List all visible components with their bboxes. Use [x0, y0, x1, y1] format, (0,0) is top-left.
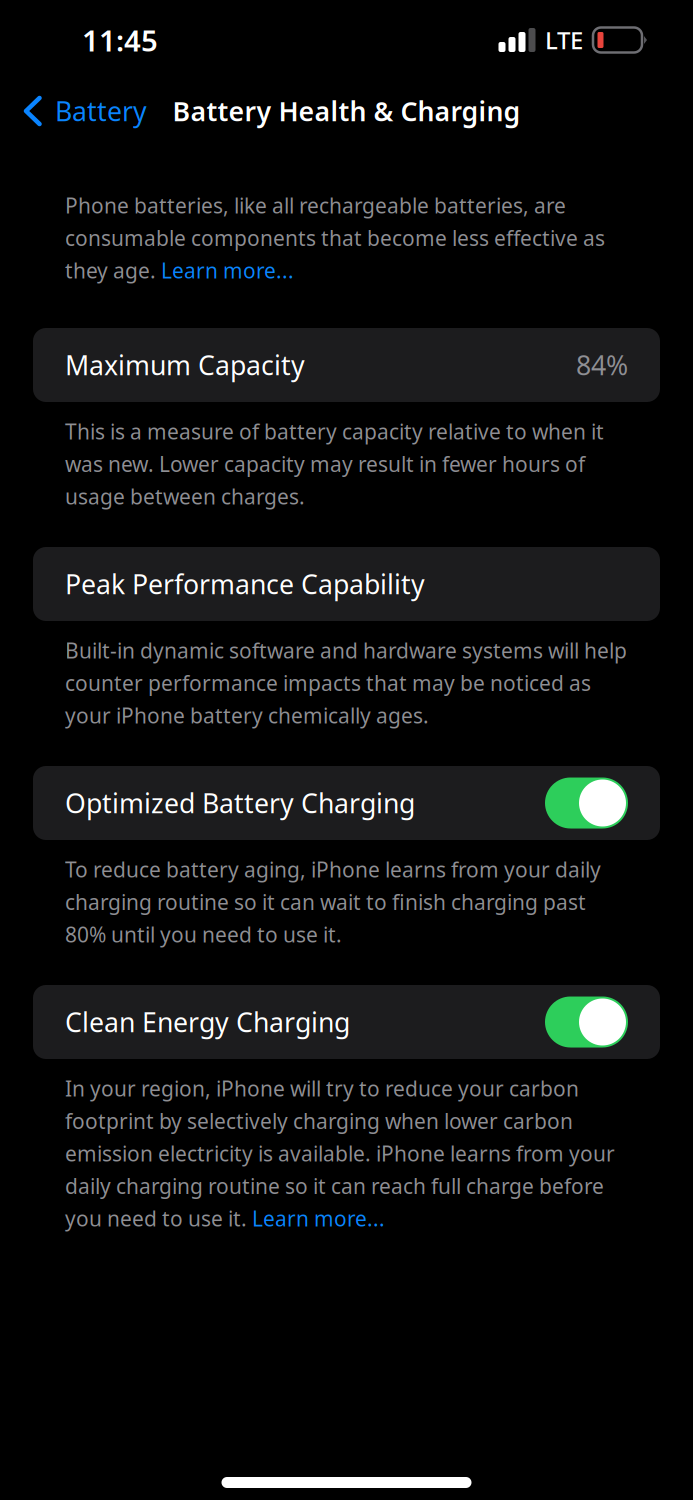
button[interactable]: Clean Energy Charging — [0, 985, 693, 1059]
button[interactable]: Peak Performance Capability — [0, 547, 693, 621]
staticText: 84% — [576, 347, 628, 383]
staticText: 11:45 — [82, 20, 158, 59]
staticText: In your region, iPhone will try to reduc… — [65, 1074, 615, 1233]
button[interactable]: Back to Battery — [8, 87, 162, 135]
staticText: Battery Health & Charging — [172, 93, 520, 129]
staticText: To reduce battery aging, iPhone learns f… — [65, 855, 601, 948]
button[interactable]: On — [545, 996, 628, 1047]
staticText: LTE — [545, 24, 583, 56]
button[interactable]: Learn more — [189, 1203, 321, 1229]
staticText: Phone batteries, like all rechargeable b… — [65, 191, 605, 284]
button[interactable]: Learn more — [98, 254, 230, 280]
staticText: This is a measure of battery capacity re… — [65, 417, 604, 510]
staticText: Built-in dynamic software and hardware s… — [65, 636, 627, 729]
staticText: Clean Energy Charging — [65, 1004, 350, 1040]
staticText: Battery — [55, 93, 147, 129]
staticText: Optimized Battery Charging — [65, 785, 415, 821]
button[interactable]: Maximum Capacity — [0, 328, 693, 402]
staticText: Maximum Capacity — [65, 347, 305, 383]
button[interactable]: Optimized Battery Charging — [0, 766, 693, 840]
staticText: Peak Performance Capability — [65, 566, 425, 602]
button[interactable]: On — [545, 777, 628, 828]
